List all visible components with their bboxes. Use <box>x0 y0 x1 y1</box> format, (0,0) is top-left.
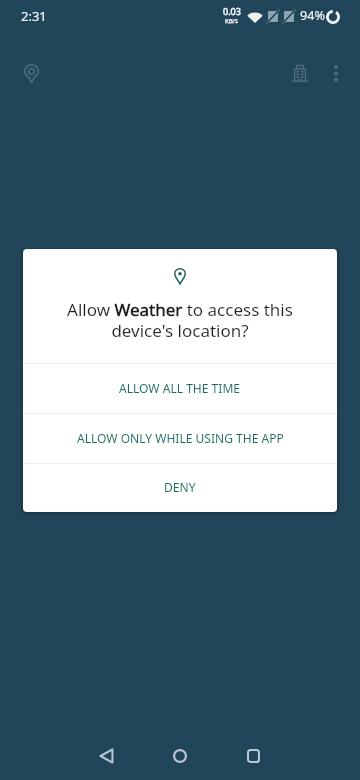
staticText: 94% <box>300 7 325 24</box>
button[interactable]: More options <box>318 49 354 85</box>
staticText: ALLOW ONLY WHILE USING THE APP <box>77 430 284 446</box>
button[interactable]: Home <box>156 732 204 780</box>
button[interactable]: Recent apps <box>229 732 277 780</box>
button[interactable]: Current location <box>7 49 55 97</box>
button[interactable]: ALLOW ALL THE TIME <box>23 364 337 413</box>
staticText: DENY <box>164 479 196 495</box>
staticText: 0.03 <box>223 5 241 17</box>
staticText: ALLOW ALL THE TIME <box>119 380 241 396</box>
staticText: Allow Weather to access this device's lo… <box>41 298 319 342</box>
button[interactable]: Back <box>82 732 130 780</box>
button[interactable]: Manage cities <box>276 49 324 97</box>
staticText: KB/S <box>225 17 239 25</box>
staticText: 2:31 <box>21 7 47 25</box>
button[interactable]: ALLOW ONLY WHILE USING THE APP <box>23 414 337 463</box>
button[interactable]: DENY <box>23 464 337 512</box>
